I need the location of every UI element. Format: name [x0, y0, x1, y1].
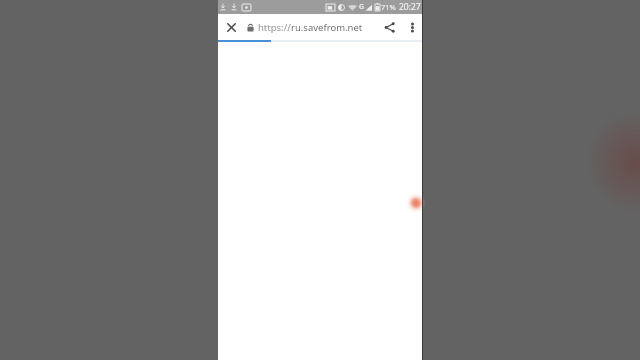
staticText: 71% [381, 2, 396, 12]
button[interactable]: Close [218, 14, 244, 40]
staticText: G [359, 2, 365, 12]
staticText: ru.savefrom.net [291, 21, 363, 34]
button[interactable]: Share [377, 15, 401, 39]
button[interactable]: More options [401, 16, 423, 38]
button[interactable]: https:// [247, 14, 377, 40]
staticText: https:// [258, 21, 291, 34]
staticText: 20:27 [399, 1, 421, 13]
